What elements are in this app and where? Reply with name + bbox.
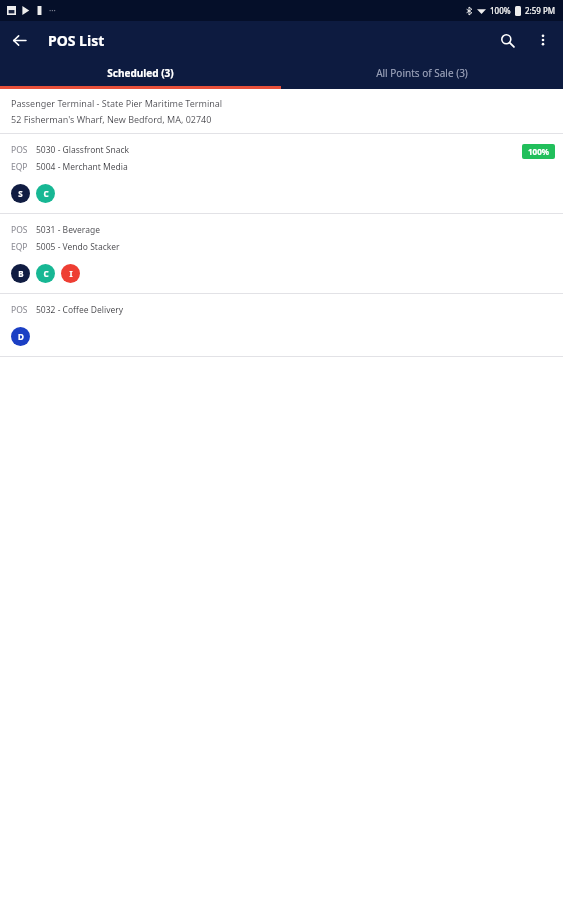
staticText: I bbox=[69, 268, 73, 279]
staticText: POS bbox=[11, 304, 28, 316]
button[interactable]: Scheduled (3) bbox=[0, 59, 281, 86]
staticText: 2:59 PM bbox=[525, 5, 556, 16]
button[interactable]: All Points of Sale (3) bbox=[281, 59, 563, 86]
staticText: D bbox=[18, 331, 24, 342]
staticText: 52 Fisherman's Wharf, New Bedford, MA, 0… bbox=[11, 113, 212, 125]
staticText: 100% bbox=[490, 5, 511, 16]
staticText: POS bbox=[11, 224, 28, 236]
staticText: C bbox=[43, 268, 49, 279]
staticText: 5031 - Beverage bbox=[36, 224, 100, 236]
staticText: ••• bbox=[49, 7, 56, 15]
staticText: Scheduled (3) bbox=[107, 66, 174, 80]
button[interactable]: Search bbox=[488, 21, 526, 59]
button[interactable]: Passenger Terminal - State Pier Maritime… bbox=[0, 89, 563, 133]
staticText: 5005 - Vendo Stacker bbox=[36, 241, 120, 253]
staticText: 100% bbox=[528, 146, 549, 157]
staticText: All Points of Sale (3) bbox=[376, 66, 468, 80]
button[interactable]: POS bbox=[0, 214, 563, 293]
button[interactable]: POS bbox=[0, 294, 563, 356]
button[interactable]: POS bbox=[0, 134, 563, 213]
staticText: S bbox=[18, 188, 23, 199]
staticText: 5032 - Coffee Delivery bbox=[36, 304, 124, 316]
staticText: EQP bbox=[11, 161, 28, 173]
button[interactable]: Back bbox=[0, 21, 38, 59]
button[interactable]: More options bbox=[526, 23, 560, 57]
staticText: B bbox=[18, 268, 24, 279]
staticText: POS bbox=[11, 144, 28, 156]
staticText: Passenger Terminal - State Pier Maritime… bbox=[11, 97, 223, 109]
staticText: POS List bbox=[48, 31, 105, 50]
staticText: 5004 - Merchant Media bbox=[36, 161, 128, 173]
staticText: C bbox=[43, 188, 49, 199]
staticText: 5030 - Glassfront Snack bbox=[36, 144, 130, 156]
staticText: EQP bbox=[11, 241, 28, 253]
